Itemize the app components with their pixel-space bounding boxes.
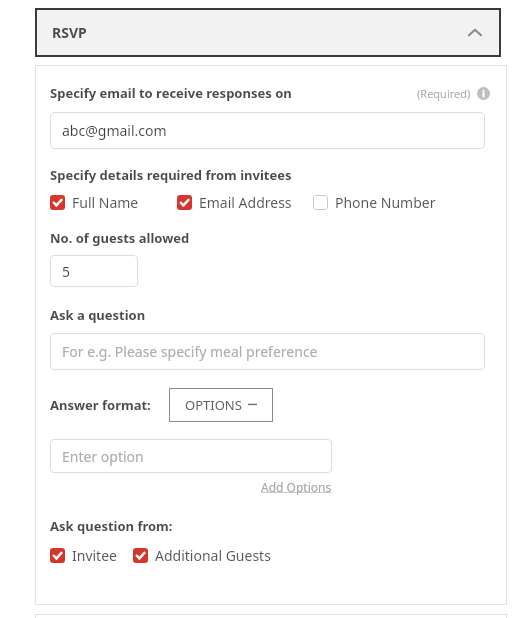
button[interactable]: Phone Number: [313, 193, 436, 212]
staticText: Email Address: [199, 193, 292, 212]
button[interactable]: Enter option: [50, 439, 332, 473]
button[interactable]: More information: [477, 87, 490, 100]
button[interactable]: [313, 195, 328, 210]
button[interactable]: Invitee: [50, 546, 117, 565]
staticText: OPTIONS: [185, 396, 242, 414]
staticText: No. of guests allowed: [50, 229, 190, 247]
button[interactable]: [177, 195, 192, 210]
staticText: 5: [62, 262, 71, 281]
staticText: Add Options: [261, 479, 332, 495]
staticText: abc@gmail.com: [62, 121, 167, 140]
button[interactable]: RSVP: [35, 8, 501, 57]
staticText: Ask a question: [50, 306, 146, 324]
button[interactable]: [50, 195, 65, 210]
button[interactable]: Additional Guests: [133, 546, 271, 565]
button[interactable]: For e.g. Please specify meal preference: [50, 333, 485, 370]
staticText: (Required): [417, 86, 471, 101]
button[interactable]: Email Address: [177, 193, 292, 212]
staticText: RSVP: [52, 23, 87, 42]
button[interactable]: abc@gmail.com: [50, 112, 485, 149]
staticText: Enter option: [62, 447, 144, 466]
staticText: Invitee: [72, 546, 117, 565]
staticText: Specify details required from invitees: [50, 166, 292, 184]
button[interactable]: [133, 548, 148, 563]
button[interactable]: OPTIONS: [169, 388, 273, 422]
staticText: Additional Guests: [155, 546, 271, 565]
staticText: Full Name: [72, 193, 139, 212]
staticText: Answer format:: [50, 396, 151, 414]
button[interactable]: Add Options: [261, 479, 332, 495]
staticText: Phone Number: [335, 193, 436, 212]
button[interactable]: Full Name: [50, 193, 139, 212]
button[interactable]: [50, 548, 65, 563]
staticText: For e.g. Please specify meal preference: [62, 342, 318, 361]
staticText: Specify email to receive responses on: [50, 84, 292, 102]
button[interactable]: 5: [50, 255, 138, 287]
staticText: Ask question from:: [50, 517, 173, 535]
button[interactable]: Collapse RSVP: [463, 21, 487, 45]
